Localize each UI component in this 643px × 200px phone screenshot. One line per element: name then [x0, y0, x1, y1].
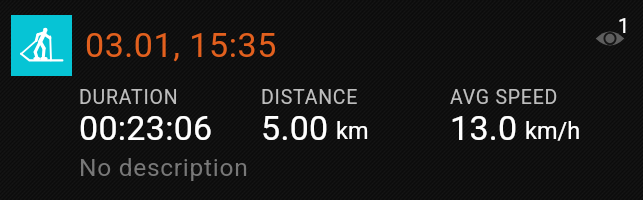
button[interactable]: Views	[590, 14, 636, 60]
staticText: km	[336, 117, 369, 145]
staticText: DURATION	[79, 86, 179, 109]
staticText: 00:23:06	[79, 108, 213, 148]
staticText: DISTANCE	[261, 86, 359, 109]
staticText: km/h	[525, 117, 581, 145]
staticText: 13.0	[450, 108, 518, 148]
staticText: 1	[618, 14, 630, 37]
staticText: AVG SPEED	[450, 86, 559, 109]
staticText: 5.00	[261, 108, 329, 148]
button[interactable]: Cross country skiing	[11, 15, 72, 76]
staticText: No description	[79, 153, 249, 182]
staticText: 03.01, 15:35	[85, 25, 277, 65]
